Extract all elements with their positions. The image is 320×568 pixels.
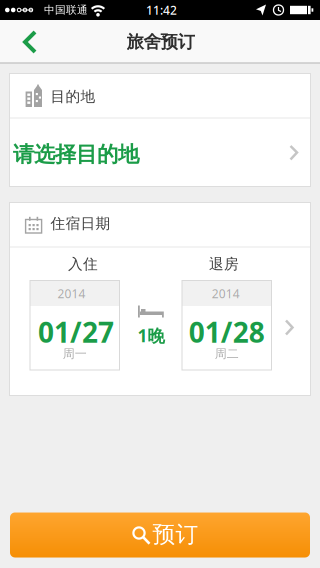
staticText: 01/27 <box>38 313 114 351</box>
staticText: 11:42 <box>146 2 177 18</box>
staticText: 周二 <box>215 346 239 361</box>
staticText: 请选择目的地 <box>13 141 139 168</box>
button[interactable]: Back <box>8 20 48 62</box>
staticText: 退房 <box>209 255 239 273</box>
staticText: 中国联通 <box>44 3 88 16</box>
staticText: 预订 <box>152 521 198 548</box>
staticText: 目的地 <box>50 87 95 105</box>
button[interactable]: 入住 <box>9 248 310 395</box>
staticText: 01/28 <box>189 313 265 351</box>
button[interactable]: 预订 <box>10 512 310 557</box>
staticText: 1晚 <box>137 324 164 347</box>
staticText: 入住 <box>68 255 98 273</box>
staticText: 周一 <box>63 346 87 361</box>
staticText: 旅舍预订 <box>126 31 194 53</box>
staticText: 住宿日期 <box>50 215 110 233</box>
button[interactable]: 请选择目的地 <box>9 118 310 186</box>
staticText: 2014 <box>212 285 240 301</box>
staticText: 2014 <box>57 285 85 301</box>
